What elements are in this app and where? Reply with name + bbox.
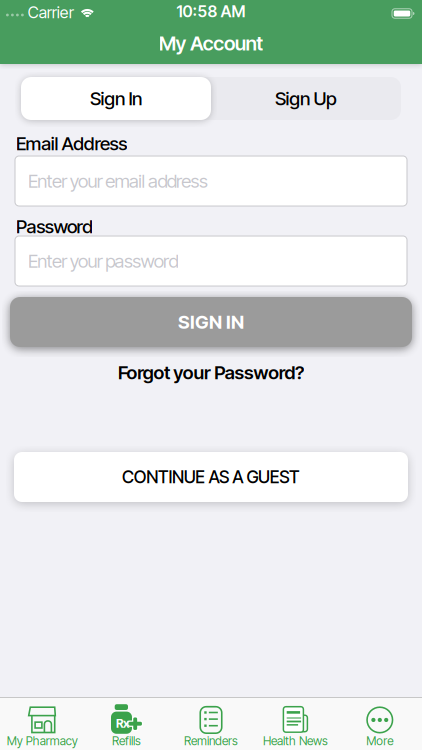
staticText: Forgot your Password? (118, 361, 304, 383)
button[interactable]: Health News (253, 698, 338, 750)
staticText: CONTINUE AS A GUEST (122, 467, 300, 487)
staticText: Enter your email address (28, 170, 208, 192)
button[interactable]: SIGN IN (10, 297, 412, 347)
button[interactable]: My Pharmacy (0, 698, 84, 750)
staticText: Refills (112, 734, 141, 748)
staticText: Sign In (90, 87, 142, 109)
staticText: Carrier (28, 3, 74, 22)
staticText: SIGN IN (178, 311, 244, 333)
button[interactable]: Sign In (21, 77, 211, 120)
button[interactable]: Sign Up (211, 77, 401, 120)
staticText: 10:58 AM (176, 2, 245, 21)
staticText: Enter your password (28, 250, 178, 272)
staticText: Email Address (16, 132, 127, 154)
staticText: Health News (263, 734, 328, 748)
button[interactable]: Reminders (169, 698, 253, 750)
button[interactable]: Forgot your Password? (0, 361, 422, 383)
staticText: My Pharmacy (7, 734, 78, 748)
staticText: More (366, 734, 393, 748)
staticText: Sign Up (275, 87, 337, 109)
staticText: Rx (116, 716, 129, 731)
button[interactable]: More (338, 698, 422, 750)
button[interactable]: CONTINUE AS A GUEST (14, 452, 408, 502)
staticText: Password (16, 215, 93, 237)
button[interactable]: Rx (84, 698, 169, 750)
staticText: Reminders (184, 734, 238, 748)
staticText: My Account (159, 31, 263, 55)
